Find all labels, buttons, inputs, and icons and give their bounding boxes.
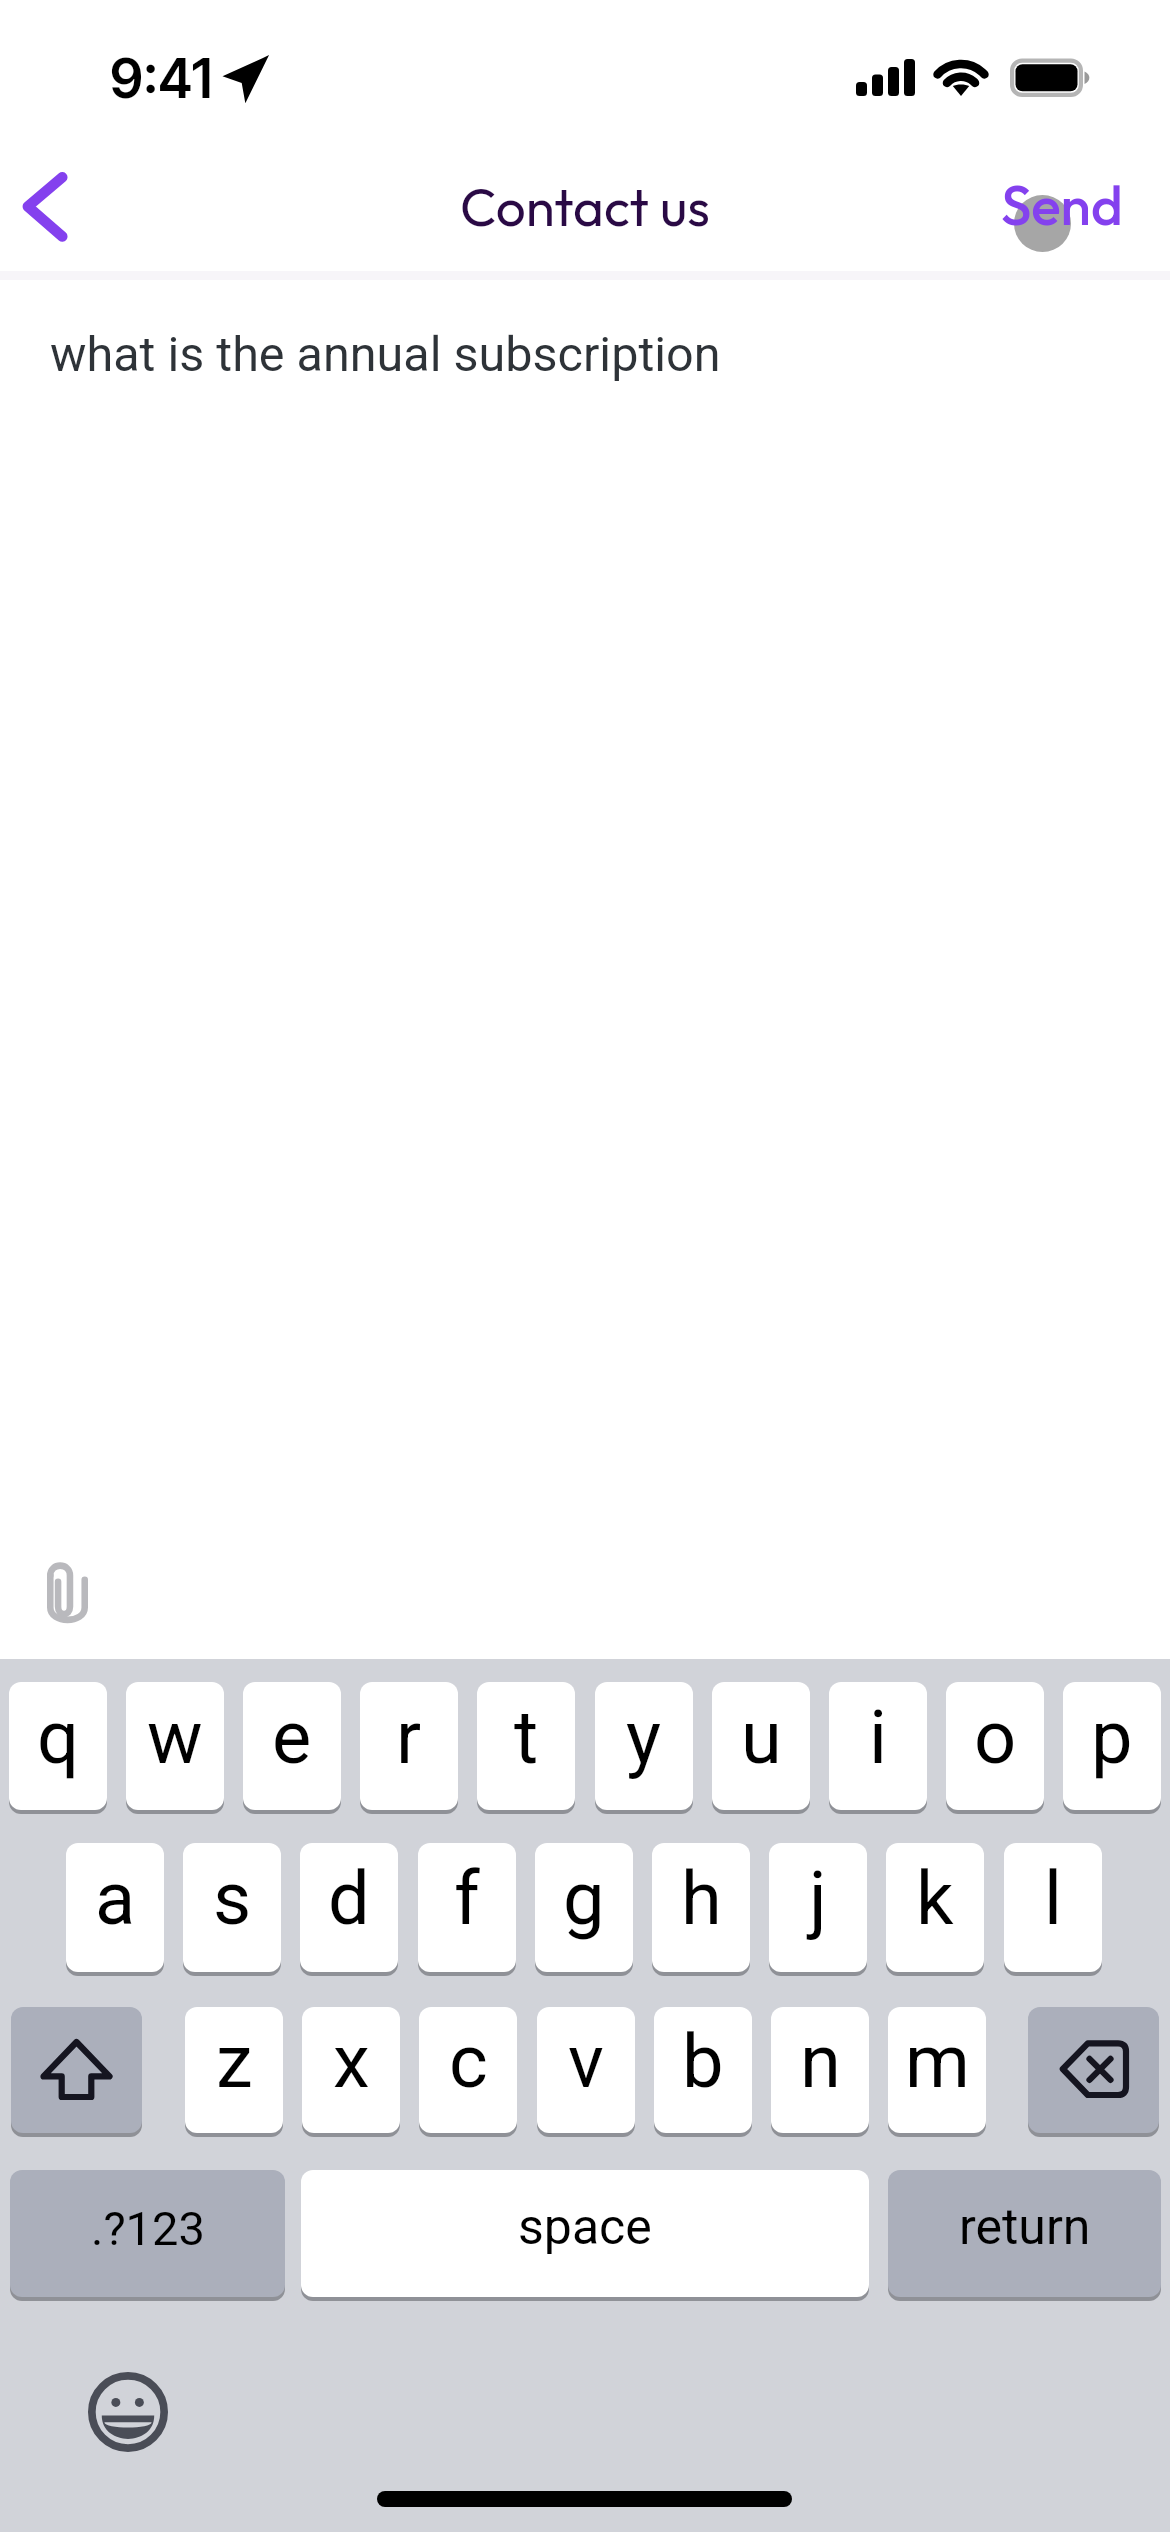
staticText: a [95, 1855, 136, 1942]
staticText: what is the annual subscription [50, 326, 721, 383]
button[interactable]: x [302, 2007, 400, 2133]
staticText: d [328, 1855, 370, 1942]
staticText: e [272, 1694, 312, 1781]
button[interactable]: z [185, 2007, 283, 2133]
staticText: g [563, 1855, 605, 1942]
button[interactable]: t [477, 1682, 575, 1810]
staticText: r [396, 1694, 422, 1781]
staticText: p [1091, 1694, 1133, 1781]
staticText: w [147, 1694, 203, 1781]
button[interactable]: h [652, 1843, 750, 1972]
button[interactable]: space [301, 2170, 869, 2297]
button[interactable]: d [300, 1843, 398, 1972]
staticText: x [333, 2018, 370, 2105]
staticText: i [869, 1694, 887, 1781]
button[interactable]: u [712, 1682, 810, 1810]
button[interactable]: r [360, 1682, 458, 1810]
staticText: l [1044, 1855, 1062, 1942]
staticText: Send [1001, 170, 1123, 239]
button[interactable]: return [888, 2170, 1161, 2297]
button[interactable]: s [183, 1843, 281, 1972]
button[interactable]: f [418, 1843, 516, 1972]
button[interactable]: Send [1001, 170, 1123, 239]
staticText: y [626, 1694, 662, 1781]
button[interactable]: Back [10, 162, 90, 252]
button[interactable]: Emoji keyboard [88, 2372, 168, 2452]
button[interactable]: .?123 [10, 2170, 285, 2297]
staticText: v [568, 2018, 604, 2105]
button[interactable]: m [888, 2007, 986, 2133]
button[interactable]: i [829, 1682, 927, 1810]
staticText: m [905, 2018, 970, 2105]
button[interactable]: q [9, 1682, 107, 1810]
staticText: k [916, 1855, 954, 1942]
staticText: n [800, 2018, 841, 2105]
button[interactable]: v [537, 2007, 635, 2133]
staticText: q [37, 1694, 80, 1781]
staticText: Contact us [0, 173, 1170, 240]
staticText: c [449, 2018, 488, 2105]
staticText: space [518, 2198, 652, 2257]
button[interactable]: p [1063, 1682, 1161, 1810]
button[interactable]: a [66, 1843, 164, 1972]
staticText: 9:41 [110, 46, 213, 111]
button[interactable]: k [886, 1843, 984, 1972]
button[interactable]: Attach file [26, 1550, 108, 1636]
staticText: b [682, 2018, 724, 2105]
button[interactable]: Backspace [1028, 2007, 1159, 2133]
button[interactable]: l [1004, 1843, 1102, 1972]
staticText: f [454, 1855, 480, 1942]
button[interactable]: w [126, 1682, 224, 1810]
button[interactable]: e [243, 1682, 341, 1810]
button[interactable]: j [769, 1843, 867, 1972]
staticText: u [741, 1694, 782, 1781]
button[interactable]: c [419, 2007, 517, 2133]
staticText: h [681, 1855, 722, 1942]
staticText: j [809, 1855, 827, 1942]
button[interactable]: Shift [11, 2007, 142, 2133]
button[interactable]: n [771, 2007, 869, 2133]
staticText: .?123 [91, 2201, 205, 2256]
staticText: return [959, 2198, 1091, 2257]
staticText: o [974, 1694, 1017, 1781]
staticText: t [514, 1694, 539, 1781]
button[interactable]: y [595, 1682, 693, 1810]
staticText: z [216, 2018, 253, 2105]
staticText: s [213, 1855, 252, 1942]
button[interactable]: b [654, 2007, 752, 2133]
button[interactable]: o [946, 1682, 1044, 1810]
button[interactable]: g [535, 1843, 633, 1972]
